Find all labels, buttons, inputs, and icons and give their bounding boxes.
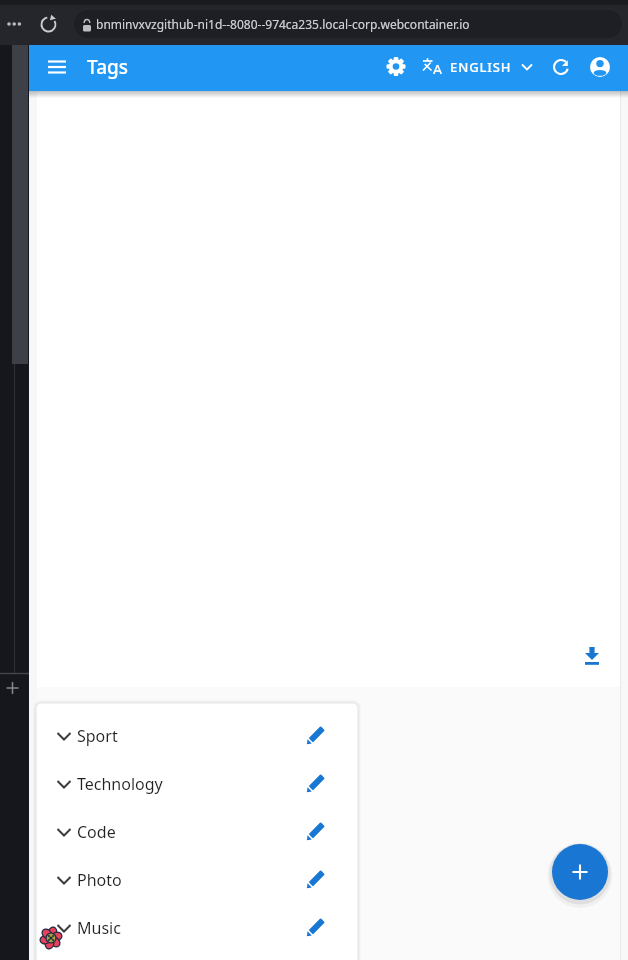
staticText: Music xyxy=(77,917,121,939)
button[interactable] xyxy=(586,53,614,81)
staticText: Photo xyxy=(77,869,122,891)
button[interactable] xyxy=(382,53,410,81)
button[interactable]: ENGLISH xyxy=(420,51,535,83)
button[interactable]: Code xyxy=(36,808,358,856)
button[interactable]: bnminvxvzgithub-ni1d--8080--974ca235.loc… xyxy=(74,10,622,38)
button[interactable] xyxy=(578,642,606,670)
staticText: ENGLISH xyxy=(450,58,512,76)
staticText: bnminvxvzgithub-ni1d--8080--974ca235.loc… xyxy=(96,16,470,32)
button[interactable] xyxy=(297,910,333,946)
staticText: Code xyxy=(77,821,116,843)
staticText: Tags xyxy=(87,54,129,80)
button[interactable] xyxy=(297,718,333,754)
button[interactable]: Technology xyxy=(36,760,358,808)
staticText: Sport xyxy=(77,725,118,747)
button[interactable] xyxy=(43,53,71,81)
button[interactable]: Sport xyxy=(36,712,358,760)
button[interactable]: Photo xyxy=(36,856,358,904)
button[interactable] xyxy=(547,53,575,81)
staticText: Technology xyxy=(77,773,163,795)
button[interactable]: Music xyxy=(36,904,358,952)
button[interactable] xyxy=(552,844,608,900)
button[interactable] xyxy=(297,766,333,802)
button[interactable] xyxy=(297,814,333,850)
button[interactable] xyxy=(297,862,333,898)
